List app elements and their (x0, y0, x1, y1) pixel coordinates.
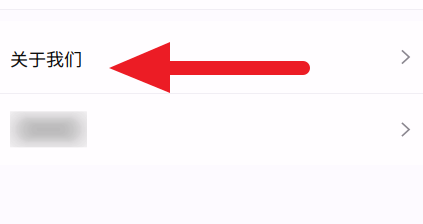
button[interactable]: 关于我们 (0, 21, 423, 93)
staticText: 关于我们 (10, 45, 82, 72)
button[interactable]: Redacted setting (0, 94, 423, 165)
